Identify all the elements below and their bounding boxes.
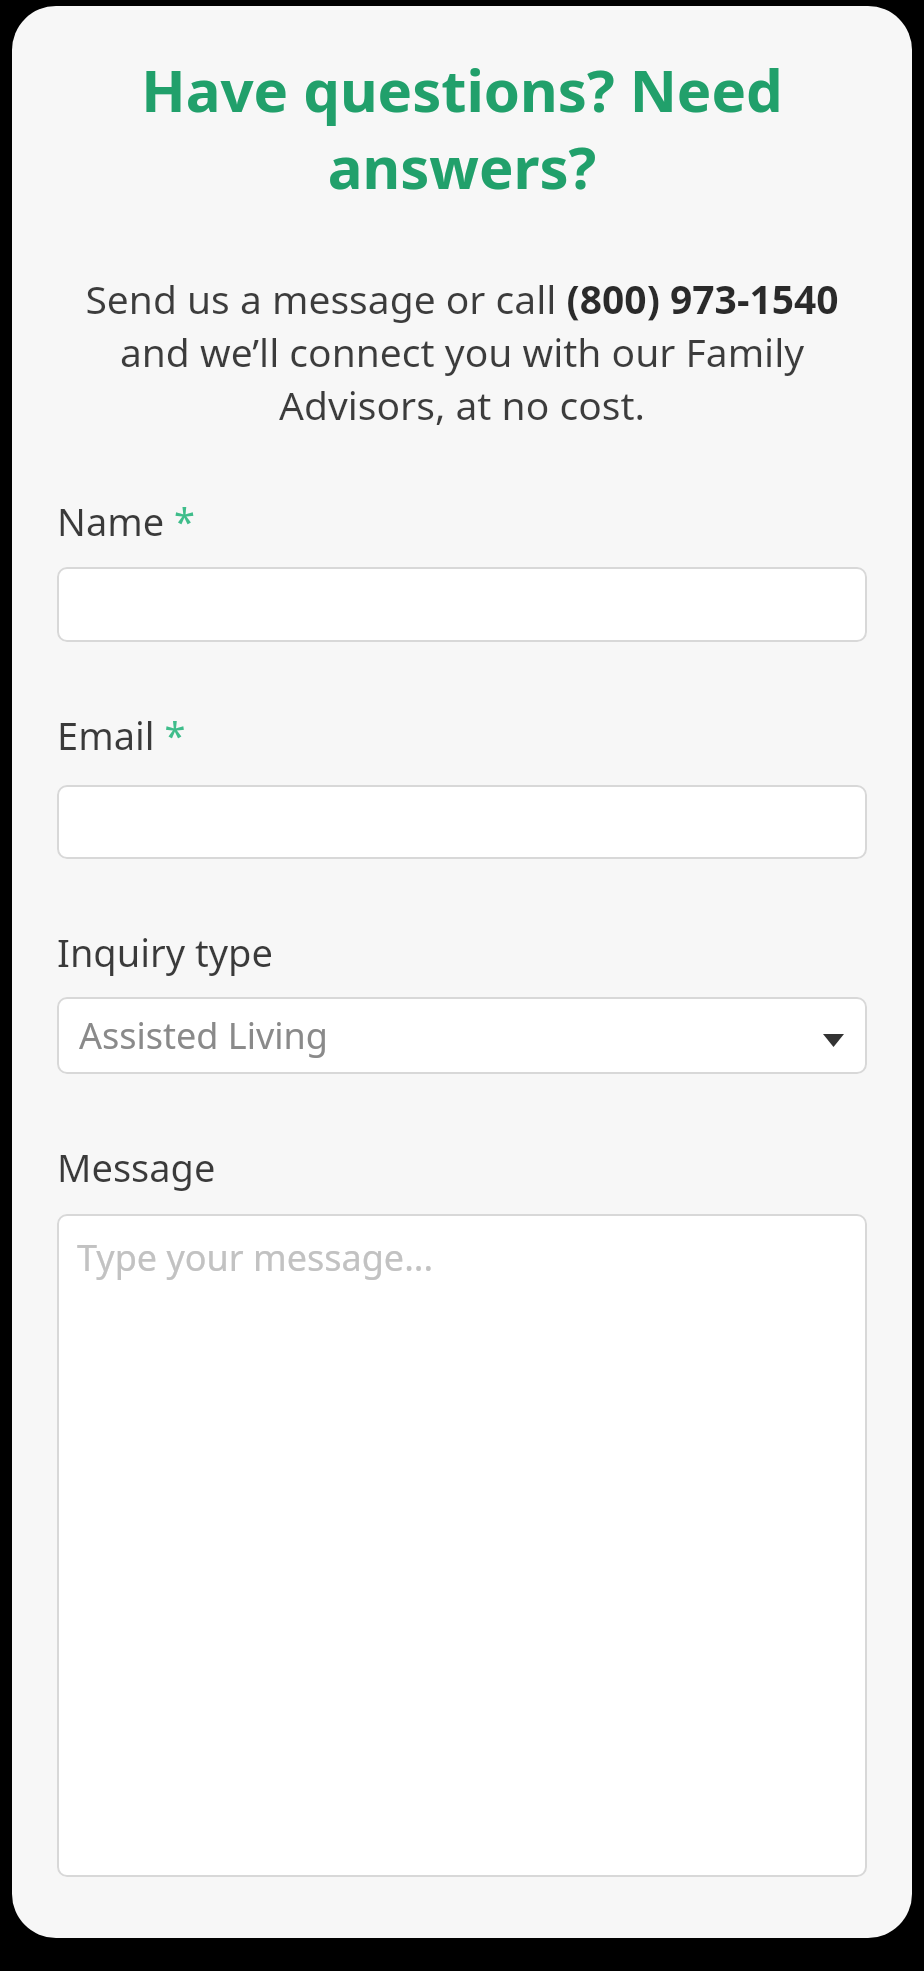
staticText: Name * (57, 495, 195, 547)
staticText: Type your message... (77, 1233, 434, 1282)
button[interactable]: Assisted Living (57, 997, 867, 1074)
button[interactable] (57, 785, 867, 859)
staticText: Assisted Living (79, 1011, 328, 1060)
staticText: Email * (57, 709, 186, 761)
button[interactable]: Type your message... (57, 1214, 867, 1877)
staticText: Inquiry type (57, 926, 273, 978)
staticText: Have questions? Need answers? (57, 50, 867, 206)
staticText: Message (57, 1141, 216, 1193)
staticText: Send us a message or call (800) 973-1540… (57, 272, 867, 431)
button[interactable] (57, 567, 867, 642)
